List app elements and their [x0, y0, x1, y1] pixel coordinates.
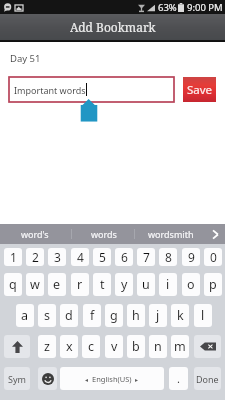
- staticText: a: [21, 307, 29, 324]
- staticText: 63%: [158, 1, 177, 14]
- button[interactable]: k: [171, 304, 189, 327]
- button[interactable]: z: [38, 335, 56, 358]
- staticText: Important words: [14, 84, 86, 96]
- staticText: 3: [54, 249, 61, 265]
- button[interactable]: Backspace: [194, 335, 221, 358]
- button[interactable]: b: [127, 335, 145, 358]
- staticText: 9: [188, 249, 195, 265]
- staticText: g: [110, 307, 118, 324]
- button[interactable]: n: [149, 335, 167, 358]
- staticText: 9:00 PM: [187, 1, 223, 14]
- staticText: u: [142, 276, 150, 293]
- button[interactable]: q: [4, 273, 22, 296]
- staticText: English(US): [92, 374, 132, 384]
- button[interactable]: 3: [48, 248, 66, 266]
- staticText: l: [201, 307, 205, 324]
- button[interactable]: s: [38, 304, 56, 327]
- staticText: 7: [143, 249, 150, 265]
- staticText: m: [174, 338, 186, 355]
- button[interactable]: o: [182, 273, 200, 296]
- button[interactable]: 8: [159, 248, 177, 266]
- staticText: r: [77, 276, 83, 293]
- button[interactable]: m: [171, 335, 189, 358]
- staticText: b: [132, 338, 140, 355]
- staticText: wordsmith: [148, 228, 194, 240]
- staticText: t: [100, 276, 105, 293]
- button[interactable]: w: [26, 273, 44, 296]
- button[interactable]: 0: [204, 248, 222, 266]
- button[interactable]: Important words: [9, 77, 174, 102]
- button[interactable]: More suggestions: [206, 224, 225, 244]
- staticText: words: [91, 228, 117, 240]
- button[interactable]: p: [204, 273, 222, 296]
- staticText: 6: [121, 249, 128, 265]
- button[interactable]: l: [194, 304, 212, 327]
- button[interactable]: Save: [183, 77, 216, 102]
- staticText: 8: [165, 249, 172, 265]
- staticText: s: [44, 307, 50, 324]
- staticText: d: [65, 307, 73, 324]
- staticText: i: [166, 276, 170, 293]
- staticText: 0: [210, 249, 217, 265]
- button[interactable]: Emoji: [38, 367, 57, 390]
- staticText: word's: [21, 228, 49, 240]
- button[interactable]: 2: [26, 248, 44, 266]
- button[interactable]: x: [60, 335, 78, 358]
- button[interactable]: j: [149, 304, 167, 327]
- button[interactable]: Sym: [4, 367, 30, 390]
- button[interactable]: .: [169, 367, 188, 390]
- staticText: ◂: [85, 376, 89, 383]
- staticText: w: [30, 276, 40, 293]
- staticText: x: [66, 338, 73, 355]
- button[interactable]: Done: [194, 367, 221, 390]
- button[interactable]: 4: [71, 248, 89, 266]
- button[interactable]: v: [105, 335, 123, 358]
- button[interactable]: a: [16, 304, 34, 327]
- button[interactable]: e: [48, 273, 66, 296]
- staticText: 4: [77, 249, 84, 265]
- button[interactable]: 1: [4, 248, 22, 266]
- staticText: o: [187, 276, 195, 293]
- staticText: h: [132, 307, 140, 324]
- button[interactable]: Space: [60, 367, 164, 390]
- button[interactable]: d: [60, 304, 78, 327]
- staticText: Day 51: [10, 52, 41, 65]
- button[interactable]: words: [72, 224, 135, 244]
- button[interactable]: t: [93, 273, 111, 296]
- staticText: 2: [32, 249, 39, 265]
- staticText: j: [156, 307, 160, 324]
- button[interactable]: y: [115, 273, 133, 296]
- button[interactable]: r: [71, 273, 89, 296]
- staticText: e: [53, 276, 61, 293]
- button[interactable]: c: [82, 335, 100, 358]
- button[interactable]: word's: [0, 224, 70, 244]
- staticText: v: [111, 338, 118, 355]
- staticText: ▸: [135, 376, 139, 383]
- button[interactable]: f: [83, 304, 101, 327]
- button[interactable]: g: [105, 304, 123, 327]
- staticText: Save: [187, 82, 213, 98]
- button[interactable]: h: [127, 304, 145, 327]
- staticText: y: [121, 276, 128, 293]
- staticText: z: [44, 338, 50, 355]
- button[interactable]: i: [159, 273, 177, 296]
- staticText: 1: [10, 249, 17, 265]
- staticText: 5: [99, 249, 106, 265]
- staticText: p: [209, 276, 217, 293]
- button[interactable]: u: [137, 273, 155, 296]
- button[interactable]: 5: [93, 248, 111, 266]
- button[interactable]: wordsmith: [135, 224, 206, 244]
- staticText: k: [177, 307, 184, 324]
- button[interactable]: 6: [115, 248, 133, 266]
- button[interactable]: 9: [182, 248, 200, 266]
- staticText: q: [9, 276, 17, 293]
- staticText: f: [90, 307, 95, 324]
- staticText: Add Bookmark: [70, 19, 156, 35]
- button[interactable]: 7: [137, 248, 155, 266]
- staticText: .: [177, 371, 180, 386]
- staticText: Done: [196, 373, 219, 385]
- button[interactable]: Shift: [4, 335, 30, 358]
- staticText: n: [154, 338, 162, 355]
- staticText: Sym: [8, 373, 26, 385]
- staticText: c: [88, 338, 95, 355]
